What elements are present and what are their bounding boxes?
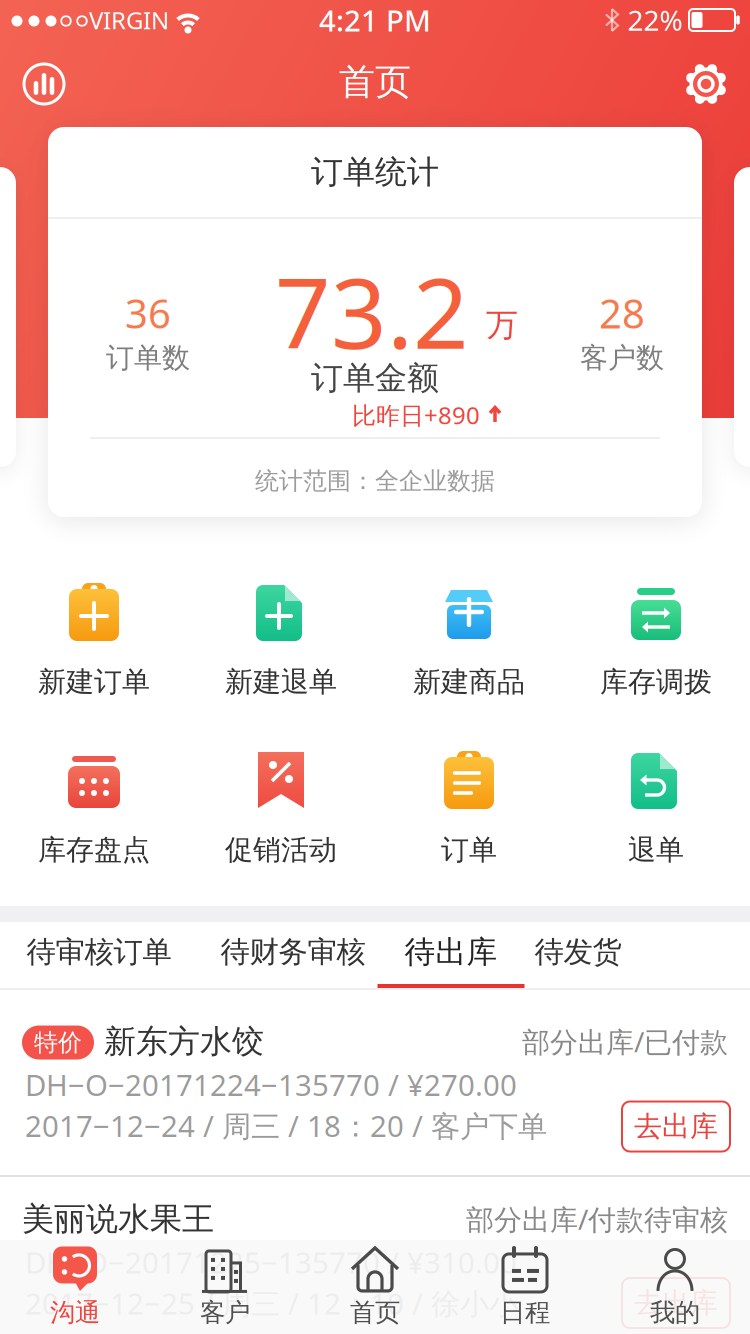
staticText: 新建订单 [38,665,150,699]
staticText: 待发货 [534,934,621,970]
staticText: 待审核订单 [26,934,171,970]
staticText: 沟通 [50,1297,100,1328]
staticText: 我的 [650,1297,700,1328]
button[interactable]: 新建商品 [375,572,562,722]
staticText: DH−O−20171224−135770 / ¥270.00 [25,1065,517,1104]
staticText: 特价 [34,1028,82,1057]
button[interactable]: 订单 [375,740,562,890]
staticText: 客户 [200,1297,250,1328]
staticText: 统计范围：全企业数据 [255,466,495,496]
staticText: VIRGIN [89,4,169,36]
button[interactable]: 特价 [0,999,750,1154]
button[interactable]: 库存调拨 [562,572,749,722]
staticText: 2017−12−25 / 周三 / 12：10 / 徐小小 [25,1283,518,1322]
staticText: 退单 [628,833,684,867]
staticText: 新建退单 [225,665,337,699]
staticText: 日程 [500,1297,550,1328]
button[interactable]: Statistics [22,62,66,106]
button[interactable]: 待审核订单 [9,920,189,984]
staticText: 订单 [441,833,497,867]
staticText: 比昨日+890 [352,399,480,431]
button[interactable]: 待发货 [508,920,648,984]
staticText: 28 [599,286,645,339]
button[interactable]: 美丽说水果王 [0,1170,750,1334]
button[interactable]: 首页 [300,1240,450,1334]
button[interactable]: 去出库 [622,1101,730,1151]
staticText: 待财务审核 [220,934,365,970]
staticText: 美丽说水果王 [22,1199,214,1239]
staticText: 去出库 [634,1286,718,1320]
staticText: 首页 [350,1297,400,1328]
staticText: 4:21 PM [319,0,431,39]
staticText: 新东方水饺 [104,1022,264,1061]
staticText: 订单金额 [311,358,439,398]
button[interactable]: 待财务审核 [203,920,383,984]
staticText: DH−O−20171225−135770 / ¥310.00 [25,1242,517,1281]
staticText: 库存调拨 [600,665,712,699]
button[interactable]: 库存盘点 [0,740,187,890]
staticText: 部分出库/已付款 [522,1023,728,1060]
staticText: 客户数 [580,341,664,375]
staticText: 部分出库/付款待审核 [466,1200,728,1238]
staticText: 22% [627,1,682,39]
staticText: 库存盘点 [38,833,150,867]
button[interactable]: 待出库 [376,920,526,984]
staticText: 新建商品 [413,665,525,699]
staticText: 万 [486,305,518,345]
button[interactable]: 新建退单 [187,572,374,722]
staticText: 促销活动 [225,833,337,867]
staticText: 待出库 [404,933,497,971]
staticText: 订单统计 [311,152,439,192]
staticText: 2017−12−24 / 周三 / 18：20 / 客户下单 [25,1106,547,1145]
button[interactable]: Settings [684,62,728,106]
staticText: 首页 [339,60,411,104]
button[interactable]: 退单 [562,740,749,890]
button[interactable]: 日程 [450,1240,600,1334]
staticText: 订单数 [106,341,190,375]
button[interactable]: 客户 [150,1240,300,1334]
button[interactable]: 我的 [600,1240,750,1334]
staticText: 36 [125,286,171,339]
staticText: 73.2 [275,246,469,376]
button[interactable]: 新建订单 [0,572,187,722]
button[interactable]: 去出库 [622,1278,730,1328]
button[interactable]: 促销活动 [187,740,374,890]
button[interactable]: 沟通 [0,1240,150,1334]
staticText: 去出库 [634,1109,718,1144]
